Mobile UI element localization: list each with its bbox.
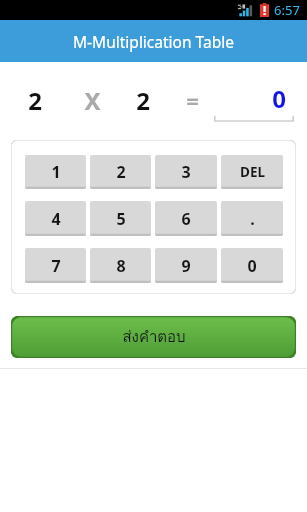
staticText: 0 xyxy=(272,82,286,115)
button[interactable]: 0 xyxy=(221,248,283,283)
button[interactable]: 5 xyxy=(90,201,151,236)
staticText: DEL xyxy=(240,163,265,181)
staticText: 3 xyxy=(181,161,191,183)
button[interactable]: 7 xyxy=(25,248,86,283)
staticText: . xyxy=(250,208,255,230)
button[interactable]: 9 xyxy=(155,248,217,283)
other: Battery low xyxy=(260,3,269,17)
staticText: 9 xyxy=(181,255,191,277)
button[interactable]: DEL xyxy=(221,155,283,189)
staticText: 2 xyxy=(136,84,150,117)
staticText: 6:57 xyxy=(274,1,300,19)
button[interactable]: 0 xyxy=(214,76,294,122)
staticText: X xyxy=(84,84,101,117)
other: 3G signal strength xyxy=(238,3,255,17)
button[interactable]: 6 xyxy=(155,201,217,236)
button[interactable]: 2 xyxy=(90,155,151,189)
button[interactable]: . xyxy=(221,201,283,236)
staticText: = xyxy=(186,85,199,115)
staticText: 6 xyxy=(181,208,191,230)
button[interactable]: 1 xyxy=(25,155,86,189)
staticText: 2 xyxy=(28,84,42,117)
staticText: 7 xyxy=(51,255,61,277)
staticText: 1 xyxy=(51,161,61,183)
staticText: 2 xyxy=(116,161,126,183)
staticText: 0 xyxy=(247,255,257,277)
staticText: 5 xyxy=(116,208,126,230)
staticText: 4 xyxy=(51,208,61,230)
button[interactable]: ส่งคำตอบ xyxy=(11,316,296,358)
button[interactable]: 3 xyxy=(155,155,217,189)
button[interactable]: 8 xyxy=(90,248,151,283)
staticText: ส่งคำตอบ xyxy=(122,325,186,349)
button[interactable]: 4 xyxy=(25,201,86,236)
staticText: 8 xyxy=(116,255,126,277)
staticText: M-Multiplication Table xyxy=(73,31,234,52)
